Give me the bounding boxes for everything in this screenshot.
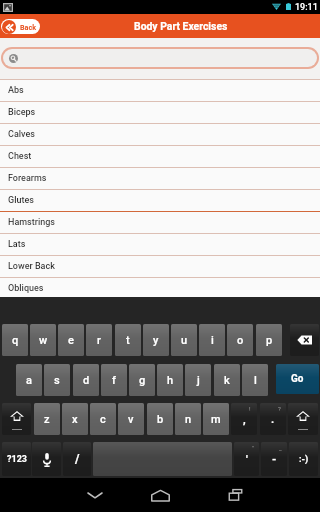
staticText: q — [12, 334, 19, 347]
button[interactable]: Abs — [0, 80, 320, 101]
staticText: k — [224, 374, 230, 387]
staticText: z — [44, 413, 50, 426]
button[interactable]: x — [62, 403, 88, 435]
button[interactable]: Voice input — [32, 442, 61, 476]
staticText: Lower Back — [8, 261, 55, 272]
button[interactable]: Home — [140, 478, 180, 512]
button[interactable]: Obliques — [0, 278, 320, 299]
button[interactable]: u — [171, 324, 197, 356]
button[interactable]: Glutes — [0, 190, 320, 211]
button[interactable]: z — [34, 403, 60, 435]
button[interactable]: m — [203, 403, 229, 435]
staticText: w — [39, 334, 48, 347]
staticText: i — [211, 334, 214, 347]
staticText: Chest — [8, 151, 32, 162]
staticText: v — [128, 413, 134, 426]
staticText: l — [254, 374, 257, 387]
button[interactable]: Shoulders — [0, 322, 320, 343]
button[interactable]: _ — [261, 442, 287, 476]
staticText: r — [97, 334, 101, 347]
button[interactable]: Backspace — [290, 324, 319, 356]
button[interactable]: Back — [1, 19, 40, 34]
button[interactable]: / — [63, 442, 91, 476]
other: Search — [9, 54, 18, 63]
button[interactable]: j — [185, 364, 211, 396]
staticText: / — [75, 452, 80, 466]
staticText: t — [126, 334, 130, 347]
button[interactable]: r — [86, 324, 112, 356]
staticText: g — [139, 374, 146, 387]
staticText: Obliques — [8, 283, 44, 294]
button[interactable]: s — [44, 364, 70, 396]
button[interactable]: ?123 — [2, 442, 31, 476]
button[interactable]: c — [90, 403, 116, 435]
button[interactable]: Back — [75, 478, 115, 512]
staticText: _ — [279, 444, 282, 451]
button[interactable]: Shift — [2, 403, 31, 435]
button[interactable]: w — [30, 324, 56, 356]
button[interactable]: Hamstrings — [0, 212, 320, 233]
button[interactable]: Shift — [288, 403, 318, 435]
staticText: - — [272, 453, 277, 466]
button[interactable]: v — [118, 403, 144, 435]
button[interactable]: Search — [3, 49, 317, 67]
button[interactable]: k — [214, 364, 240, 396]
staticText: Hamstrings — [8, 217, 55, 228]
staticText: Biceps — [8, 107, 36, 118]
staticText: Abs — [8, 85, 24, 96]
staticText: y — [153, 334, 159, 347]
staticText: " — [252, 444, 254, 451]
staticText: h — [167, 374, 174, 387]
button[interactable]: p — [256, 324, 282, 356]
button[interactable]: Chest — [0, 146, 320, 167]
button[interactable]: Calves — [0, 124, 320, 145]
button[interactable] — [93, 442, 232, 476]
button[interactable]: o — [227, 324, 253, 356]
button[interactable]: d — [73, 364, 99, 396]
button[interactable]: q — [2, 324, 28, 356]
staticText: Body Part Exercises — [134, 20, 228, 32]
button[interactable]: t — [115, 324, 141, 356]
staticText: d — [83, 374, 90, 387]
button[interactable]: ! — [231, 403, 257, 435]
button[interactable]: y — [143, 324, 169, 356]
staticText: f — [112, 374, 116, 387]
staticText: a — [26, 374, 32, 387]
staticText: ?123 — [7, 454, 27, 465]
button[interactable]: h — [157, 364, 183, 396]
button[interactable]: g — [129, 364, 155, 396]
button[interactable]: Go — [276, 364, 319, 394]
staticText: 19:11 — [295, 2, 318, 13]
button[interactable]: Biceps — [0, 102, 320, 123]
staticText: Lats — [8, 239, 26, 250]
button[interactable]: f — [101, 364, 127, 396]
staticText: o — [237, 334, 244, 347]
button[interactable]: e — [58, 324, 84, 356]
button[interactable]: Lower Back — [0, 256, 320, 277]
staticText: c — [100, 413, 106, 426]
button[interactable]: Recent apps — [215, 478, 255, 512]
button[interactable]: i — [199, 324, 225, 356]
staticText: Shoulders — [8, 327, 49, 338]
staticText: ? — [278, 405, 281, 412]
button[interactable]: ? — [260, 403, 286, 435]
staticText: Glutes — [8, 195, 34, 206]
button[interactable]: a — [16, 364, 42, 396]
button[interactable]: l — [242, 364, 268, 396]
staticText: s — [54, 374, 60, 387]
staticText: u — [181, 334, 188, 347]
button[interactable]: Lats — [0, 234, 320, 255]
button[interactable]: b — [147, 403, 173, 435]
staticText: p — [266, 334, 273, 347]
button[interactable]: n — [175, 403, 201, 435]
staticText: , — [243, 413, 246, 426]
staticText: ' — [246, 453, 248, 466]
button[interactable]: " — [234, 442, 259, 476]
staticText: n — [185, 413, 192, 426]
button[interactable]: :-) — [289, 442, 318, 476]
staticText: Forearms — [8, 173, 47, 184]
staticText: e — [68, 334, 74, 347]
button[interactable]: Forearms — [0, 168, 320, 189]
